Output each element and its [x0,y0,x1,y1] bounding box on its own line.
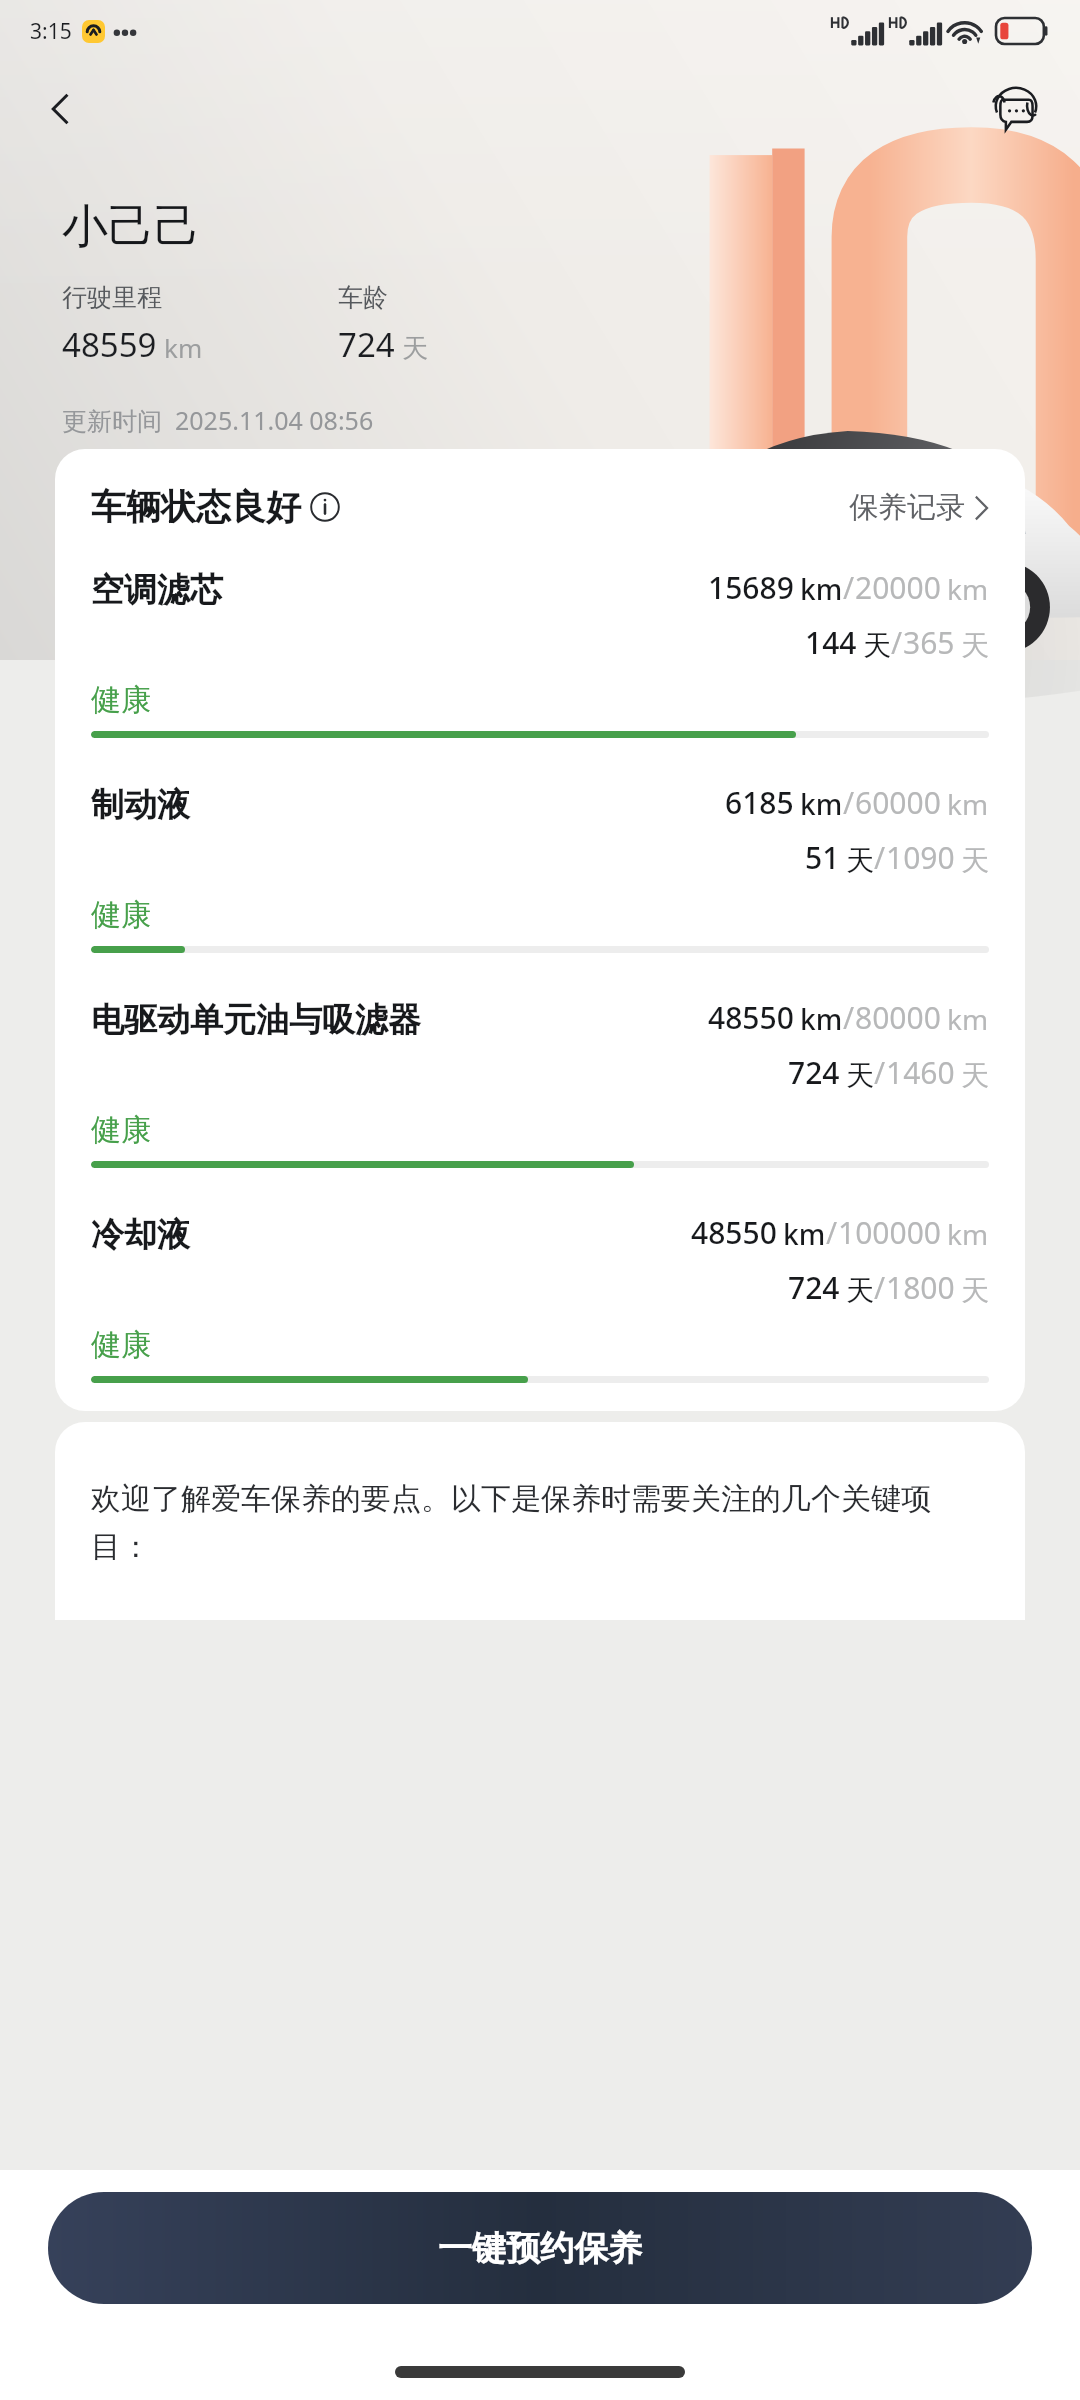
staticText: 3:15 [30,17,72,46]
staticText: / [874,1052,886,1093]
staticText: 724 [338,322,395,367]
staticText: 保养记录 [849,489,965,526]
staticText: 欢迎了解爱车保养的要点。以下是保养时需要关注的几个关键项目： [91,1480,989,1566]
staticText: 车辆状态良好 [91,485,301,529]
staticText: 1460 [886,1052,955,1093]
staticText: 365 [903,622,955,663]
button[interactable]: Customer service [982,75,1050,143]
staticText: 天 [961,628,989,663]
staticText: 724 [788,1267,840,1308]
staticText: / [874,837,886,878]
staticText: 冷却液 [91,1214,691,1256]
staticText: 144 [805,622,857,663]
staticText: km [947,570,989,608]
staticText: km [947,1215,989,1253]
staticText: / [826,1212,838,1253]
staticText: 一键预约保养 [438,2227,642,2270]
staticText: 48559 [62,322,157,367]
staticText: 1800 [886,1267,955,1308]
staticText: 制动液 [91,784,725,826]
staticText: / [891,622,903,663]
button[interactable]: 保养记录 [849,489,989,526]
staticText: 51 [805,837,840,878]
staticText: 48550 [708,997,794,1038]
staticText: 天 [846,843,874,878]
staticText: 天 [961,1058,989,1093]
staticText: 100000 [838,1212,941,1253]
staticText: 空调滤芯 [91,569,708,611]
staticText: 20000 [855,567,941,608]
staticText: km [947,1000,989,1038]
staticText: 1090 [886,837,955,878]
staticText: 更新时间 2025.11.04 08:56 [62,403,374,437]
staticText: 健康 [91,1326,151,1364]
staticText: 80000 [855,997,941,1038]
staticText: 天 [863,628,891,663]
staticText: 天 [846,1058,874,1093]
staticText: / [843,567,855,608]
staticText: 48550 [691,1212,777,1253]
staticText: 健康 [91,1111,151,1149]
staticText: km [800,1000,843,1038]
button[interactable]: 车辆状态良好 [91,485,340,529]
staticText: 行驶里程 [62,282,162,313]
staticText: / [874,1267,886,1308]
staticText: 天 [961,843,989,878]
staticText: 健康 [91,681,151,719]
staticText: / [843,997,855,1038]
staticText: km [947,785,989,823]
staticText: 60000 [855,782,941,823]
staticText: 724 [788,1052,840,1093]
staticText: km [783,1215,826,1253]
button[interactable]: 一键预约保养 [48,2192,1032,2304]
staticText: km [164,330,203,365]
staticText: 天 [402,332,428,365]
staticText: 小己己 [62,198,200,256]
staticText: 车龄 [338,282,388,313]
staticText: km [800,570,843,608]
staticText: km [800,785,843,823]
staticText: 15689 [708,567,794,608]
staticText: 电驱动单元油与吸滤器 [91,999,708,1041]
staticText: 天 [961,1273,989,1308]
staticText: 健康 [91,896,151,934]
button[interactable]: Back [30,78,92,140]
staticText: 6185 [725,782,794,823]
staticText: 天 [846,1273,874,1308]
staticText: / [843,782,855,823]
